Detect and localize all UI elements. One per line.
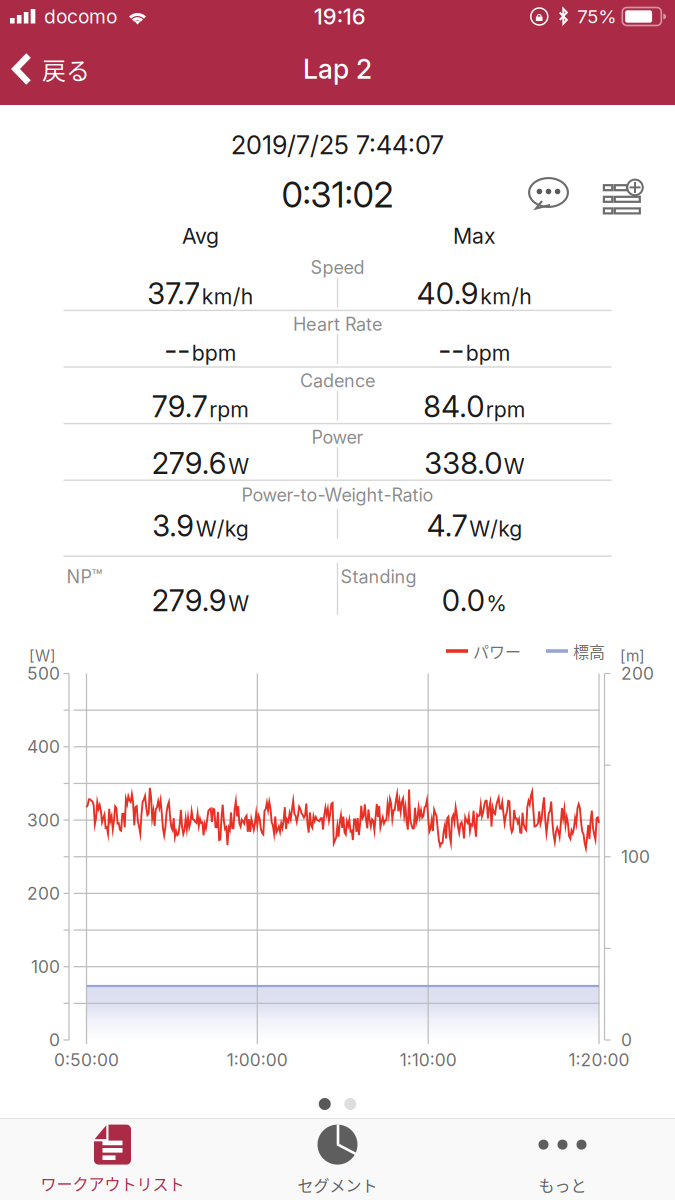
staticText: 84.0 <box>423 389 484 424</box>
staticText: もっと <box>538 1173 586 1196</box>
staticText: Power <box>311 426 363 448</box>
staticText: Lap 2 <box>303 53 372 85</box>
staticText: 400 <box>27 736 60 757</box>
staticText: km/h <box>480 283 532 309</box>
staticText: Speed <box>310 257 364 278</box>
staticText: ワークアウトリスト <box>40 1172 184 1195</box>
staticText: 1:00:00 <box>227 1049 288 1070</box>
staticText: 279.6 <box>152 446 227 481</box>
staticText: W/kg <box>196 516 249 542</box>
staticText: 3.9 <box>152 508 194 544</box>
staticText: 500 <box>27 663 60 684</box>
staticText: W <box>228 453 249 479</box>
staticText: 79.7 <box>152 389 208 424</box>
staticText: 0:31:02 <box>281 174 393 216</box>
staticText: 40.9 <box>417 276 479 311</box>
staticText: docomo <box>44 5 117 28</box>
staticText: -- <box>164 332 190 368</box>
staticText: Cadence <box>300 370 375 392</box>
staticText: 2019/7/25 7:44:07 <box>231 130 444 160</box>
staticText: 300 <box>27 810 60 831</box>
staticText: % <box>486 591 507 616</box>
staticText: Heart Rate <box>293 313 382 335</box>
staticText: W/kg <box>469 516 522 542</box>
button[interactable]: セグメント <box>225 1119 450 1200</box>
staticText: NP™ <box>66 566 102 588</box>
staticText: 75% <box>577 5 616 28</box>
staticText: 1:10:00 <box>400 1049 457 1070</box>
button[interactable]: 戻る <box>0 35 106 103</box>
button[interactable]: Add to list <box>603 170 645 216</box>
staticText: 338.0 <box>424 446 502 481</box>
staticText: 標高 <box>573 639 605 663</box>
staticText: 0:50:00 <box>54 1049 119 1070</box>
staticText: [W] <box>29 647 56 665</box>
staticText: 100 <box>621 846 650 867</box>
staticText: rpm <box>209 397 249 422</box>
staticText: 200 <box>621 663 654 684</box>
staticText: パワー <box>473 639 521 663</box>
staticText: 200 <box>27 883 60 904</box>
staticText: 0 <box>621 1029 632 1050</box>
staticText: 37.7 <box>147 276 200 311</box>
staticText: 279.9 <box>152 583 227 618</box>
staticText: 0.0 <box>442 583 485 618</box>
staticText: rpm <box>486 397 526 422</box>
staticText: -- <box>438 332 464 368</box>
button[interactable]: ワークアウトリスト <box>0 1119 225 1200</box>
staticText: W <box>228 591 249 616</box>
staticText: 0 <box>49 1029 60 1050</box>
staticText: 戻る <box>42 52 90 86</box>
staticText: Standing <box>340 566 416 588</box>
staticText: 4.7 <box>427 508 468 544</box>
staticText: 1:20:00 <box>568 1049 629 1070</box>
staticText: [m] <box>620 647 645 665</box>
staticText: セグメント <box>297 1173 377 1196</box>
button[interactable]: もっと <box>450 1119 675 1200</box>
staticText: 100 <box>31 956 60 977</box>
staticText: bpm <box>192 340 237 366</box>
staticText: Avg <box>182 223 219 249</box>
staticText: W <box>504 453 525 479</box>
staticText: km/h <box>202 283 254 309</box>
button[interactable]: Comments <box>528 176 569 210</box>
staticText: bpm <box>466 340 511 366</box>
staticText: Power-to-Weight-Ratio <box>241 484 433 506</box>
staticText: 19:16 <box>314 3 366 30</box>
staticText: Max <box>453 223 496 249</box>
